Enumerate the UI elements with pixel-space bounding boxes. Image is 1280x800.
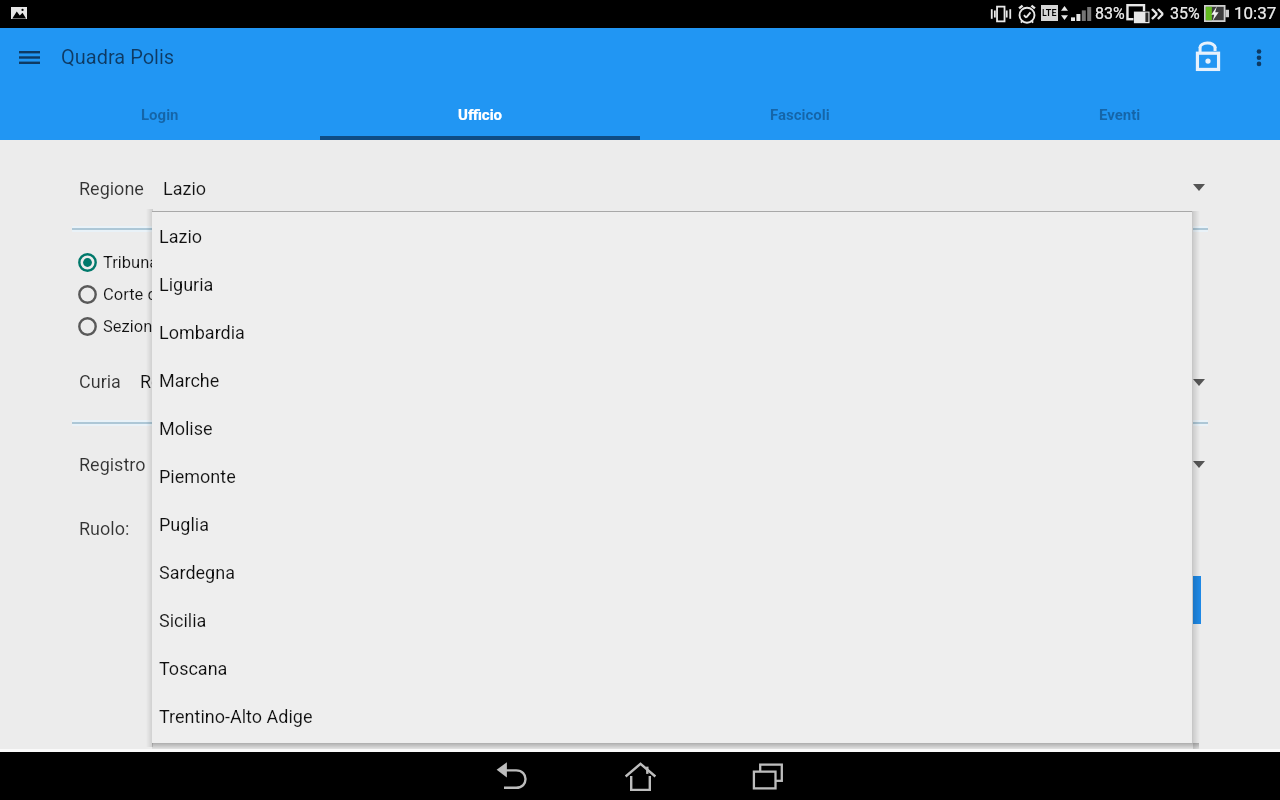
button[interactable]: Unlock xyxy=(1184,32,1232,80)
staticText: Trentino-Alto Adige xyxy=(159,706,313,727)
staticText: Marche xyxy=(159,370,220,391)
button[interactable]: Scroll position xyxy=(1193,576,1201,624)
staticText: Fascicoli xyxy=(770,106,830,124)
staticText: Liguria xyxy=(159,274,214,295)
button[interactable]: Eventi xyxy=(960,88,1280,140)
button[interactable]: Registro xyxy=(72,439,1208,489)
staticText: Corte d'Appello xyxy=(103,285,215,304)
staticText: Eventi xyxy=(1099,106,1141,124)
button[interactable]: Trentino-Alto Adige xyxy=(151,692,1192,740)
staticText: Sezione Distaccata xyxy=(103,317,244,336)
staticText: Lazio xyxy=(159,226,203,247)
button[interactable]: Ufficio xyxy=(320,88,640,140)
button[interactable]: Recent apps xyxy=(740,752,796,800)
staticText: Login xyxy=(141,106,179,124)
button[interactable]: Back xyxy=(484,752,540,800)
staticText: Tribunale xyxy=(103,253,172,272)
button[interactable]: Sardegna xyxy=(151,548,1192,596)
button[interactable]: Puglia xyxy=(151,500,1192,548)
staticText: Registro xyxy=(79,454,146,475)
staticText: 83% xyxy=(1095,4,1125,23)
button[interactable]: Sicilia xyxy=(151,596,1192,644)
staticText: Sardegna xyxy=(159,562,235,583)
staticText: Piemonte xyxy=(159,466,236,487)
button[interactable]: Home xyxy=(612,752,668,800)
button[interactable]: Lombardia xyxy=(151,308,1192,356)
staticText: Molise xyxy=(159,418,213,439)
staticText: Puglia xyxy=(159,514,209,535)
button[interactable]: Liguria xyxy=(151,260,1192,308)
button[interactable]: Marche xyxy=(151,356,1192,404)
staticText: Regione xyxy=(79,178,144,199)
button[interactable]: Fascicoli xyxy=(640,88,960,140)
staticText: Ruolo: xyxy=(79,518,130,539)
button[interactable]: Toscana xyxy=(151,644,1192,692)
staticText: Quadra Polis xyxy=(61,45,175,68)
staticText: Roma xyxy=(140,371,187,392)
button[interactable]: Login xyxy=(0,88,320,140)
button[interactable]: Open navigation drawer xyxy=(5,33,53,81)
staticText: Curia xyxy=(79,371,121,392)
staticText: 10:37 xyxy=(1234,3,1277,23)
staticText: Lombardia xyxy=(159,322,245,343)
staticText: Civile xyxy=(165,454,209,475)
staticText: Sicilia xyxy=(159,610,207,631)
button[interactable]: Molise xyxy=(151,404,1192,452)
button[interactable]: More options xyxy=(1236,34,1280,80)
button[interactable]: Sezione Distaccata xyxy=(78,313,244,339)
button[interactable]: Curia xyxy=(72,356,1208,406)
staticText: LTE xyxy=(1042,8,1057,19)
button[interactable]: Lazio xyxy=(151,212,1192,260)
button[interactable]: Tribunale xyxy=(78,249,172,275)
button[interactable]: Ruolo: xyxy=(72,503,1208,553)
button[interactable]: Regione xyxy=(72,163,1208,213)
staticText: Lazio xyxy=(163,178,207,199)
staticText: Toscana xyxy=(159,658,228,679)
button[interactable]: Corte d'Appello xyxy=(78,281,215,307)
staticText: 35% xyxy=(1170,4,1200,23)
button[interactable]: Piemonte xyxy=(151,452,1192,500)
staticText: Ufficio xyxy=(458,106,503,124)
